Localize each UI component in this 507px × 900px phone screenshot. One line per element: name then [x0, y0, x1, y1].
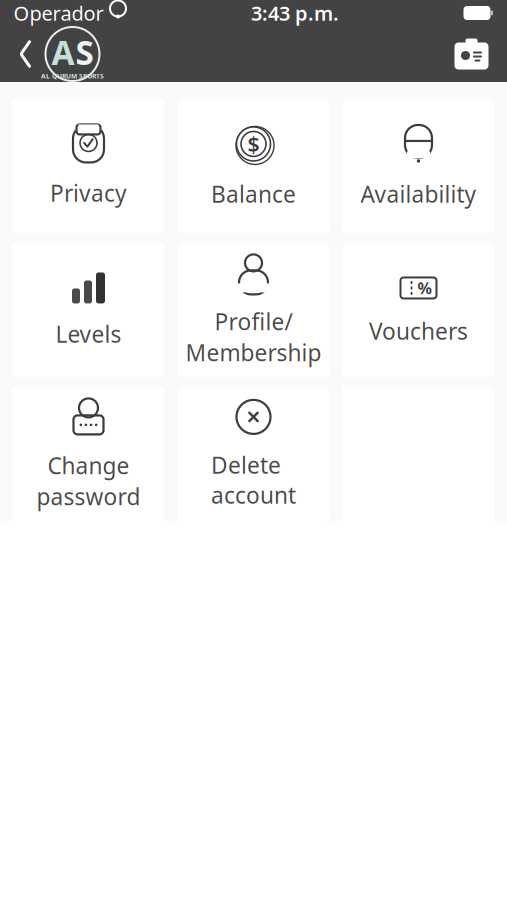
staticText: Operador	[13, 0, 103, 26]
staticText: Change	[47, 450, 129, 480]
button[interactable]: Availability	[342, 99, 494, 233]
button[interactable]: Back	[0, 26, 39, 82]
button[interactable]: %	[342, 243, 494, 377]
staticText: 3:43 p.m.	[251, 0, 339, 26]
staticText: Profile/	[214, 306, 292, 336]
staticText: $	[247, 130, 259, 158]
staticText: Vouchers	[369, 316, 468, 346]
staticText: Membership	[185, 337, 321, 368]
staticText: AL QURUM SPORTS	[41, 72, 104, 80]
button[interactable]: Levels	[12, 243, 164, 377]
staticText: Balance	[211, 179, 296, 209]
button[interactable]: Delete account	[177, 387, 329, 521]
button[interactable]: $	[177, 99, 329, 233]
button[interactable]: Privacy	[12, 99, 164, 233]
staticText: Privacy	[50, 178, 127, 208]
staticText: Levels	[55, 319, 121, 349]
staticText: password	[36, 481, 140, 512]
staticText: S	[75, 30, 93, 74]
button[interactable]: Change	[12, 387, 164, 521]
button[interactable]: Membership card	[435, 26, 507, 82]
staticText: Delete account	[211, 450, 296, 510]
button[interactable]: Profile/	[177, 243, 329, 377]
staticText: Availability	[360, 179, 476, 209]
staticText: %	[417, 277, 431, 298]
staticText: A	[51, 30, 74, 74]
